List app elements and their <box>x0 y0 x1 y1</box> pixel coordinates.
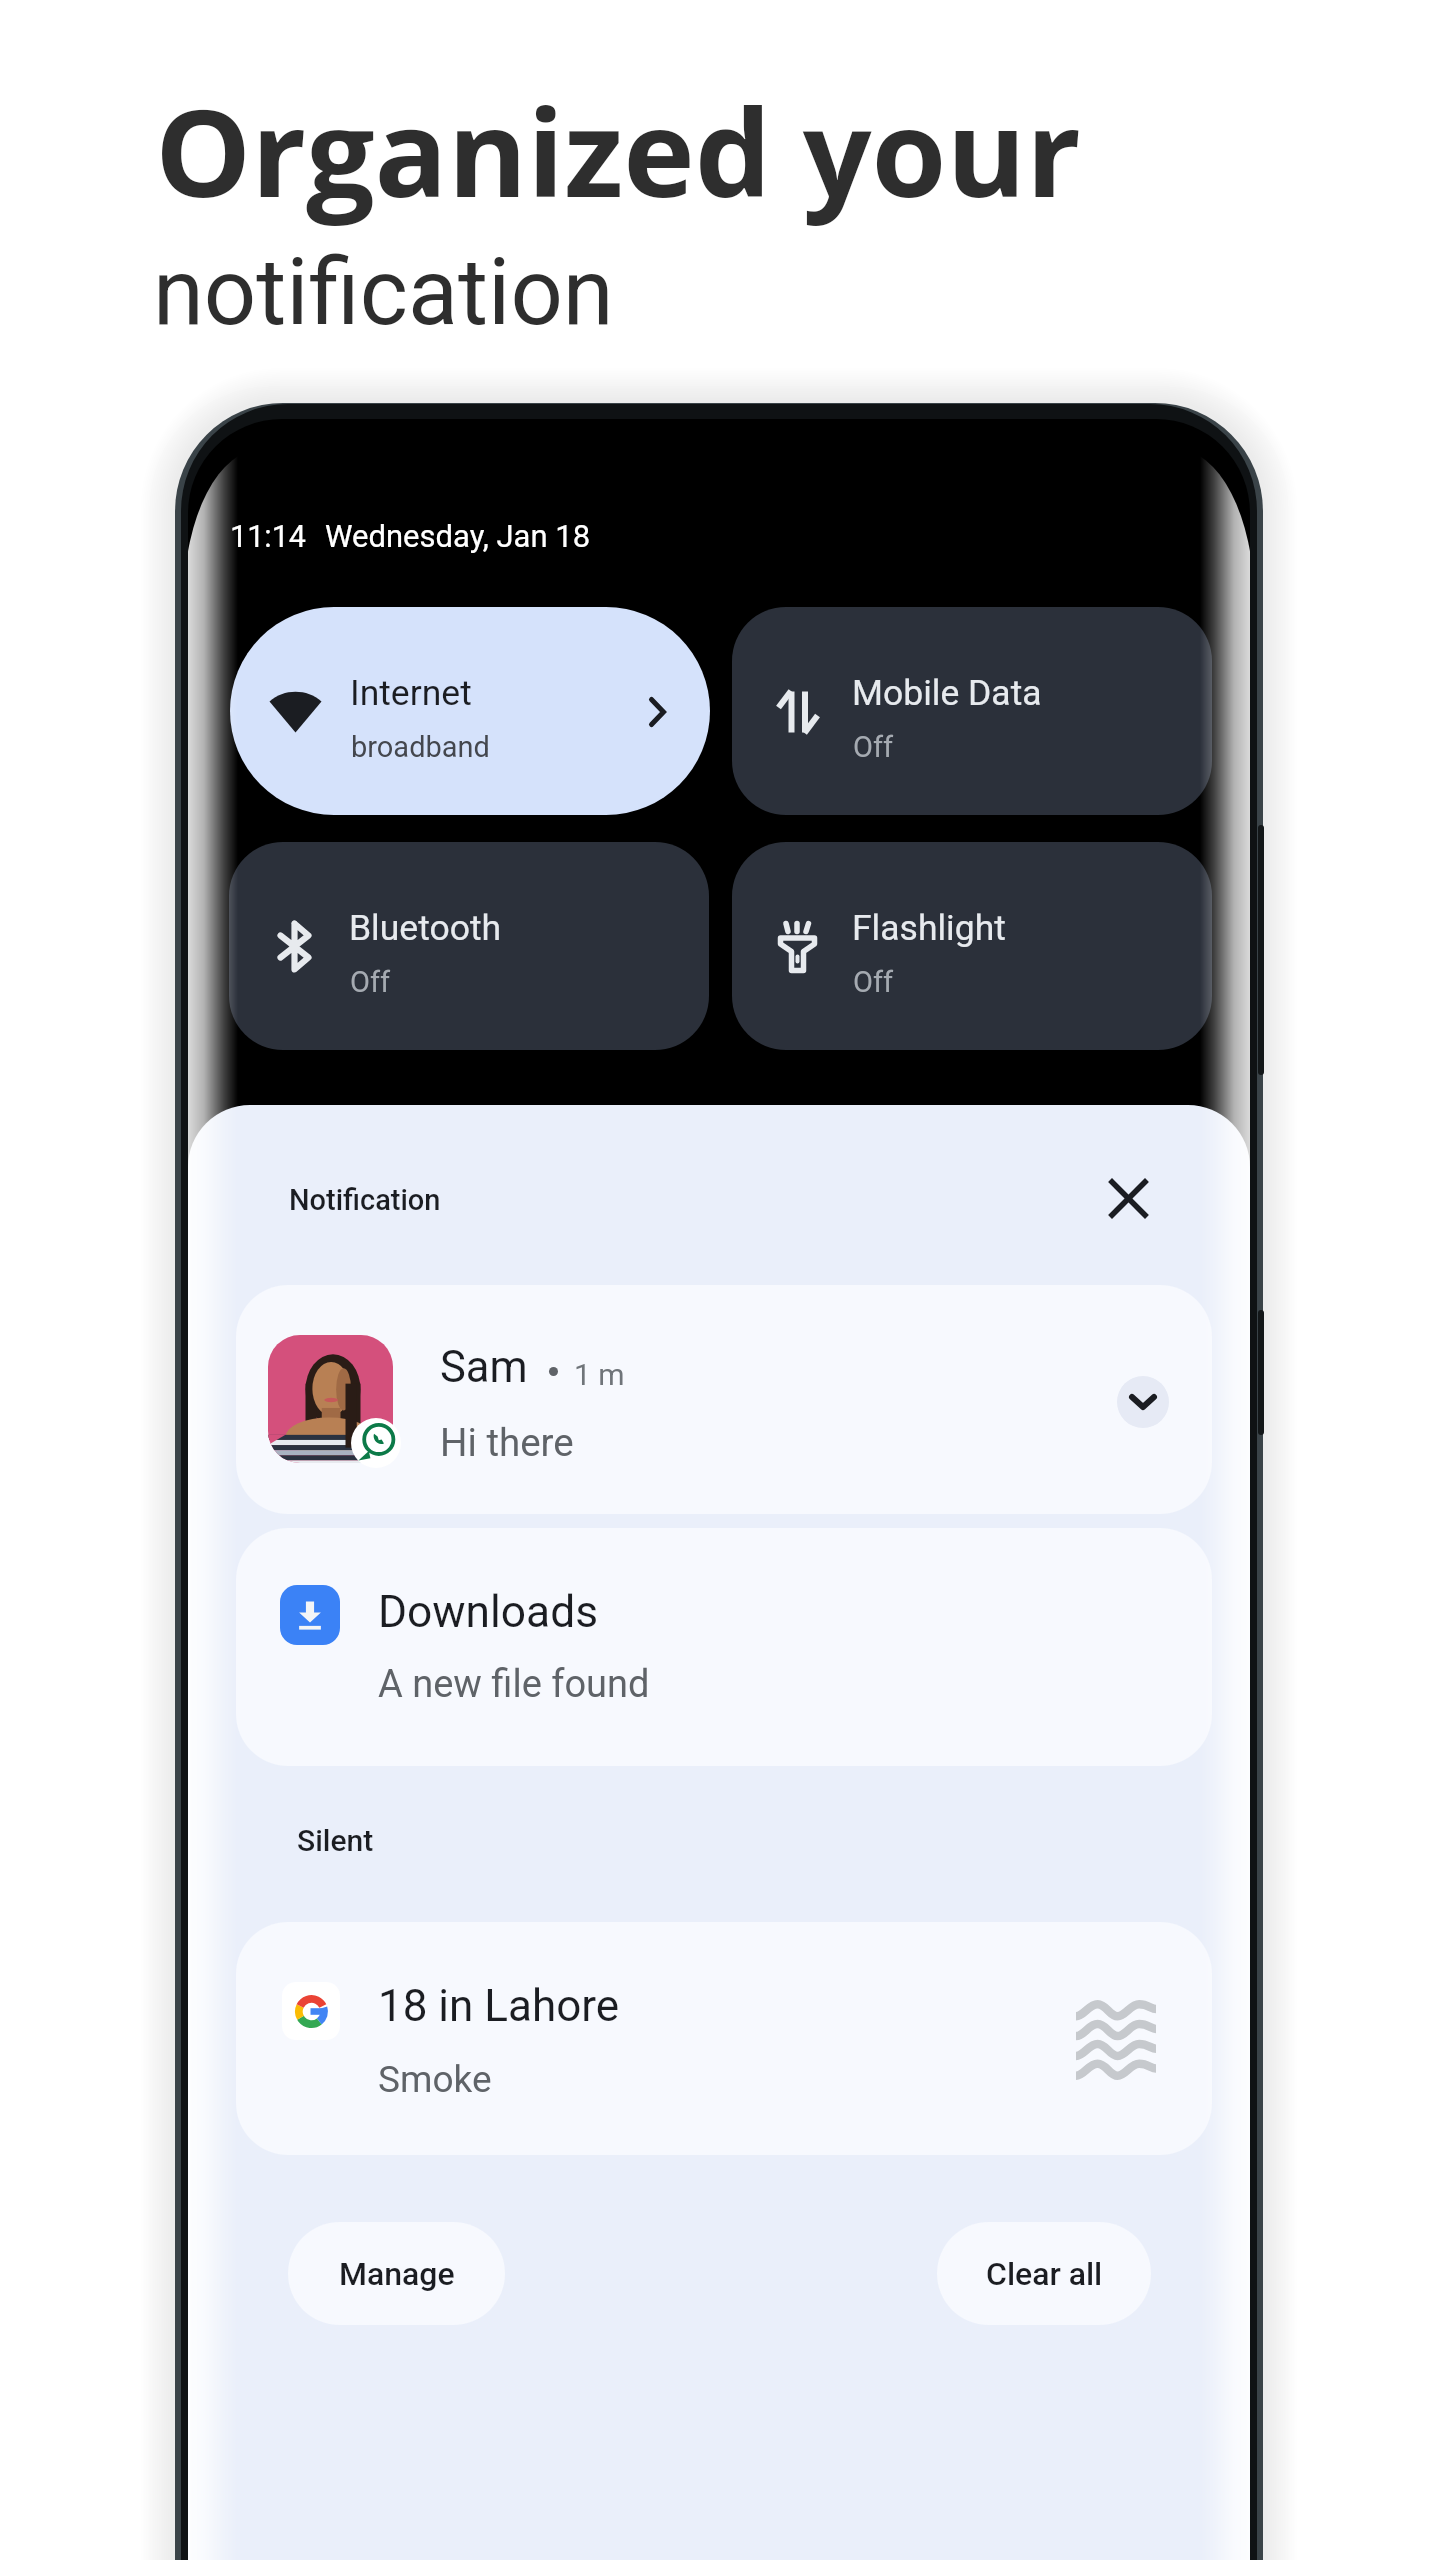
staticText: Silent <box>297 1823 374 1858</box>
staticText: 11:14 <box>230 519 306 555</box>
staticText: Organized your <box>155 68 1081 233</box>
staticText: Clear all <box>986 2255 1103 2293</box>
button[interactable]: Downloads <box>236 1528 1212 1766</box>
staticText: Downloads <box>378 1586 599 1638</box>
button[interactable]: Close notification shade <box>1088 1158 1168 1238</box>
staticText: Off <box>853 965 894 999</box>
staticText: Sam <box>440 1342 528 1393</box>
staticText: Smoke <box>378 2058 492 2101</box>
button[interactable]: 18 in Lahore <box>236 1922 1212 2155</box>
staticText: notification <box>153 239 614 347</box>
staticText: Hi there <box>440 1420 574 1465</box>
staticText: Bluetooth <box>349 907 502 949</box>
button[interactable]: Expand notification <box>1117 1376 1169 1428</box>
staticText: 1 m <box>574 1357 625 1392</box>
staticText: Off <box>853 730 894 764</box>
button[interactable]: Sam <box>236 1285 1212 1514</box>
staticText: Internet <box>350 672 472 714</box>
staticText: A new file found <box>378 1662 650 1707</box>
button[interactable]: Flashlight <box>732 842 1212 1050</box>
staticText: Mobile Data <box>852 672 1042 714</box>
staticText: 18 in Lahore <box>378 1980 620 2032</box>
staticText: Off <box>350 965 391 999</box>
button[interactable]: Internet <box>230 607 710 815</box>
button[interactable]: Manage <box>288 2222 505 2325</box>
staticText: Wednesday, Jan 18 <box>325 518 591 554</box>
button[interactable]: Bluetooth <box>229 842 709 1050</box>
staticText: broadband <box>351 730 490 764</box>
button[interactable]: Clear all <box>937 2222 1151 2325</box>
staticText: Flashlight <box>852 907 1006 949</box>
staticText: Notification <box>289 1183 441 1217</box>
staticText: Manage <box>339 2255 455 2293</box>
button[interactable]: Mobile Data <box>732 607 1212 815</box>
